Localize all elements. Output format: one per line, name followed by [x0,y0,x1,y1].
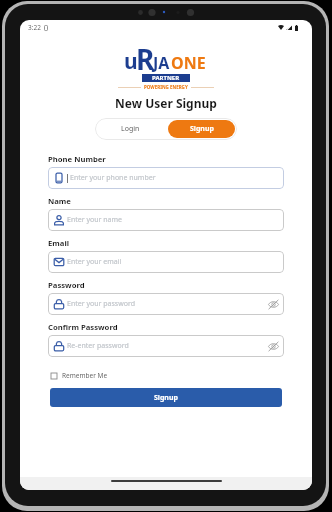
button[interactable]: Enter your email [48,251,284,273]
staticText: Confirm Password [48,322,118,332]
staticText: Password [48,280,85,290]
staticText: PARTNER [152,74,180,82]
button[interactable]: Enter your password [48,293,284,315]
staticText: ONE [171,52,206,74]
staticText: New User Signup [20,95,312,111]
staticText: Re-enter password [67,341,129,351]
staticText: Email [48,238,69,248]
staticText: Signup [190,124,214,134]
staticText: Remember Me [62,371,108,380]
button[interactable]: Signup [50,388,282,407]
staticText: Signup [154,393,178,403]
staticText: 3:22 [28,23,41,32]
staticText: R [136,40,155,78]
staticText: JA [153,52,170,74]
button[interactable]: Signup [168,120,235,138]
staticText: Enter your phone number [70,173,156,183]
button[interactable]: Login [95,118,166,140]
staticText: Enter your password [67,299,135,309]
staticText: Phone Number [48,154,106,164]
other: Toggle password visibility [268,299,279,310]
other: Toggle password visibility [268,341,279,352]
staticText: POWERING ENERGY [144,84,188,90]
button[interactable]: Enter your name [48,209,284,231]
button[interactable]: Remember Me [51,371,108,380]
button[interactable]: Re-enter password [48,335,284,357]
staticText: Enter your name [67,215,122,225]
staticText: Name [48,196,71,206]
staticText: u [124,47,138,76]
button[interactable]: Enter your phone number [48,167,284,189]
staticText: Login [121,124,140,134]
staticText: Enter your email [67,257,122,267]
